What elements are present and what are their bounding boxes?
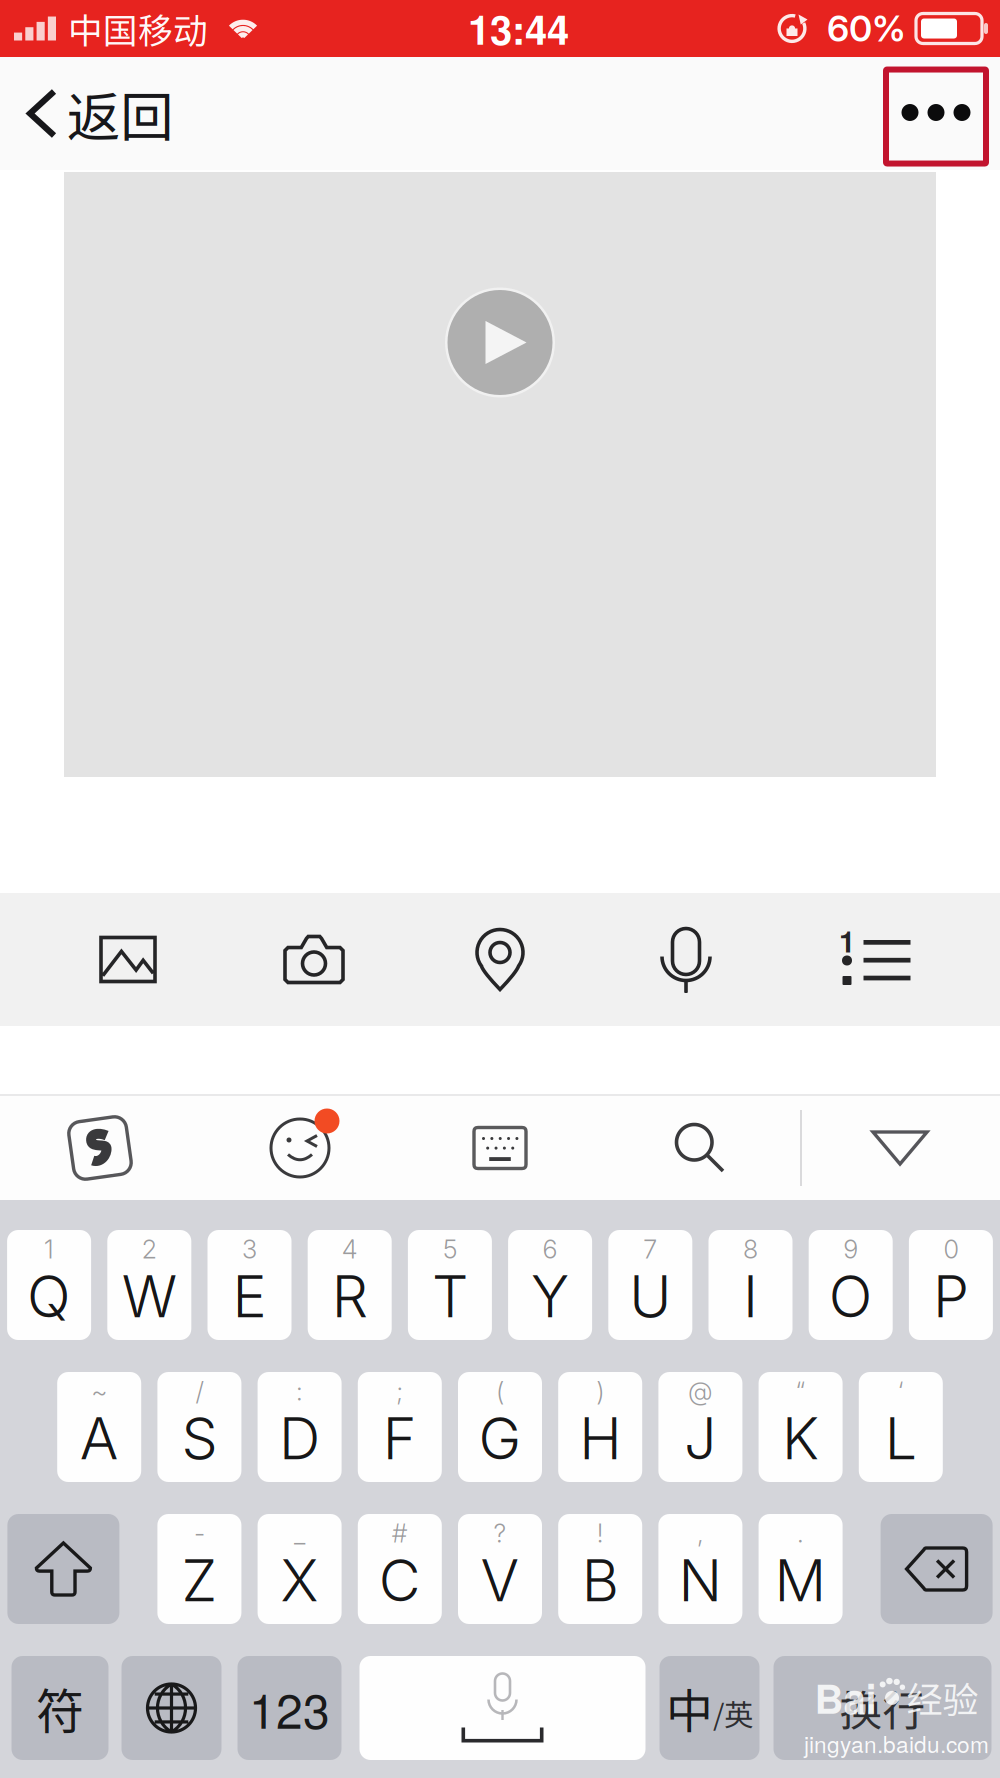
button[interactable]: ~ (57, 1372, 141, 1482)
button[interactable]: 5 (408, 1230, 492, 1340)
button[interactable]: Space (359, 1656, 645, 1760)
staticText: N (678, 1546, 722, 1615)
button[interactable]: 返回 (0, 61, 173, 166)
button[interactable]: Return (773, 1656, 991, 1760)
staticText: E (232, 1262, 266, 1331)
staticText: B (582, 1546, 619, 1615)
button[interactable]: 4 (308, 1230, 392, 1340)
staticText: 返回 (67, 75, 173, 152)
button[interactable]: Symbols (11, 1656, 108, 1760)
staticText: 9 (843, 1234, 858, 1265)
staticText: V (480, 1546, 519, 1615)
button[interactable]: , (658, 1514, 742, 1624)
button[interactable]: 1 (7, 1230, 91, 1340)
button[interactable]: ; (358, 1372, 442, 1482)
staticText: 2 (142, 1234, 157, 1265)
staticText: A (80, 1404, 119, 1473)
staticText: 中 (666, 1674, 713, 1742)
button[interactable]: 9 (809, 1230, 893, 1340)
staticText: 中国移动 (68, 3, 208, 54)
staticText: _ (294, 1518, 305, 1549)
button[interactable]: ? (458, 1514, 542, 1624)
button[interactable]: Switch language (121, 1656, 221, 1760)
staticText: 13:44 (468, 0, 569, 57)
button[interactable]: 7 (608, 1230, 692, 1340)
staticText: 5 (443, 1234, 457, 1265)
staticText: S (181, 1404, 217, 1473)
staticText: X (281, 1546, 319, 1615)
button[interactable]: - (157, 1514, 241, 1624)
button[interactable]: ! (558, 1514, 642, 1624)
button[interactable]: Search (600, 1096, 800, 1200)
staticText: Z (181, 1546, 217, 1615)
staticText: P (933, 1262, 969, 1331)
staticText: 1 (44, 1234, 54, 1265)
button[interactable]: Chinese English toggle (659, 1656, 759, 1760)
staticText: Bai (814, 1669, 876, 1726)
staticText: L (885, 1404, 917, 1473)
staticText: D (279, 1404, 320, 1473)
staticText: /英 (713, 1692, 753, 1734)
staticText: 60% (827, 7, 906, 50)
button[interactable]: Hide keyboard (800, 1096, 1000, 1200)
button[interactable]: : (258, 1372, 342, 1482)
button[interactable]: 8 (708, 1230, 792, 1340)
staticText: 换行 (839, 1677, 925, 1739)
button[interactable]: Numbers (237, 1656, 341, 1760)
staticText: jingyan.baidu.com (804, 1727, 989, 1759)
staticText: 经验 (906, 1671, 978, 1723)
button[interactable]: _ (258, 1514, 342, 1624)
button[interactable]: ) (558, 1372, 642, 1482)
button[interactable]: Emoji (200, 1096, 400, 1200)
staticText: ? (493, 1518, 506, 1549)
staticText: ) (596, 1376, 604, 1407)
button[interactable]: Numbered list (779, 893, 965, 1026)
staticText: 0 (943, 1234, 958, 1265)
staticText: @ (688, 1376, 713, 1407)
staticText: ‘ (898, 1376, 904, 1407)
staticText: G (478, 1404, 521, 1473)
button[interactable]: “ (759, 1372, 843, 1482)
staticText: Q (27, 1262, 71, 1331)
staticText: 符 (36, 1673, 84, 1743)
button[interactable]: 2 (107, 1230, 191, 1340)
staticText: T (432, 1262, 468, 1331)
staticText: J (684, 1404, 717, 1473)
staticText: ; (396, 1376, 403, 1407)
button[interactable]: Delete (881, 1514, 993, 1624)
button[interactable]: 3 (207, 1230, 291, 1340)
staticText: W (122, 1262, 177, 1331)
staticText: F (383, 1404, 417, 1473)
staticText: 3 (242, 1234, 257, 1265)
staticText: 7 (643, 1234, 657, 1265)
button[interactable]: 6 (508, 1230, 592, 1340)
staticText: 6 (543, 1234, 558, 1265)
button[interactable]: @ (658, 1372, 742, 1482)
button[interactable]: Keyboard layout (400, 1096, 600, 1200)
button[interactable]: # (358, 1514, 442, 1624)
staticText: . (797, 1518, 804, 1549)
button[interactable]: Photo library (35, 893, 221, 1026)
staticText: C (379, 1546, 421, 1615)
button[interactable]: Location (407, 893, 593, 1026)
button[interactable]: / (157, 1372, 241, 1482)
staticText: ! (597, 1518, 604, 1549)
button[interactable]: . (759, 1514, 843, 1624)
staticText: , (697, 1518, 704, 1549)
staticText: K (782, 1404, 819, 1473)
button[interactable]: ( (458, 1372, 542, 1482)
button[interactable]: Sogou input method (0, 1096, 200, 1200)
button[interactable]: More options (881, 61, 991, 165)
button[interactable]: ‘ (859, 1372, 943, 1482)
staticText: : (296, 1376, 303, 1407)
button[interactable]: 0 (909, 1230, 993, 1340)
staticText: 4 (342, 1234, 358, 1265)
staticText: # (392, 1518, 408, 1549)
staticText: ~ (91, 1376, 107, 1407)
button[interactable]: Play video (440, 282, 560, 402)
button[interactable]: Shift (7, 1514, 119, 1624)
staticText: Y (531, 1262, 569, 1331)
button[interactable]: Voice input (593, 893, 779, 1026)
button[interactable]: Camera (221, 893, 407, 1026)
staticText: - (194, 1518, 205, 1549)
